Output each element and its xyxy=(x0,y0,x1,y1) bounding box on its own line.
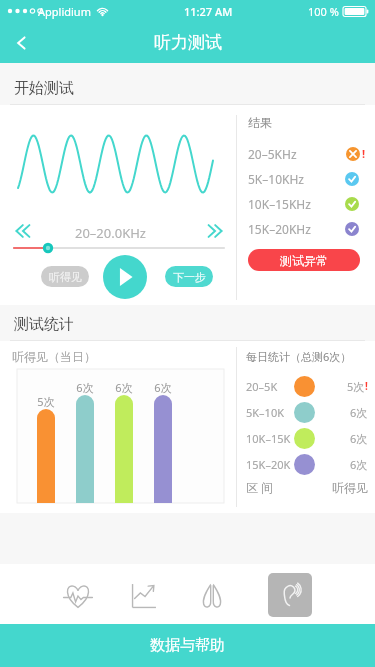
staticText: 测试异常 xyxy=(280,253,328,268)
staticText: 测试统计 xyxy=(14,315,74,334)
staticText: 10K–15K xyxy=(246,431,293,446)
staticText: ! xyxy=(362,146,366,161)
staticText: 6次 xyxy=(150,380,176,395)
button[interactable]: 数据与帮助 xyxy=(0,624,375,667)
staticText: 区 间 xyxy=(246,479,274,495)
staticText: 听得见 xyxy=(49,270,82,284)
staticText: 5次 xyxy=(347,379,365,394)
button[interactable]: Play xyxy=(103,255,147,299)
staticText: 听力测试 xyxy=(154,32,222,53)
button[interactable]: Lungs xyxy=(192,576,232,616)
staticText: 5K–10KHz xyxy=(248,171,304,187)
staticText: 15K–20KHz xyxy=(248,221,311,237)
staticText: 6次 xyxy=(350,431,368,446)
staticText: 数据与帮助 xyxy=(150,636,225,655)
staticText: 15K–20K xyxy=(246,457,293,472)
button[interactable]: 测试异常 xyxy=(248,249,360,271)
staticText: 6次 xyxy=(350,457,368,472)
button[interactable]: 5K–10KHz xyxy=(248,166,366,191)
button[interactable]: 20–5KHz xyxy=(248,141,366,166)
button[interactable]: Heart rate xyxy=(58,576,98,616)
button[interactable]: 10K–15KHz xyxy=(248,191,366,216)
staticText: 6次 xyxy=(111,380,137,395)
staticText: 20–5KHz xyxy=(248,146,297,162)
button[interactable]: 下一步 xyxy=(165,266,213,287)
staticText: 听得见 xyxy=(332,480,368,495)
button[interactable]: Back xyxy=(0,22,44,63)
button[interactable]: 15K–20KHz xyxy=(248,216,366,241)
staticText: ! xyxy=(365,379,368,393)
button[interactable]: 听得见 xyxy=(41,266,89,287)
staticText: 5次 xyxy=(33,394,59,409)
button[interactable]: Trends xyxy=(124,576,164,616)
button[interactable]: Next xyxy=(196,219,230,243)
staticText: 6次 xyxy=(72,380,98,395)
button[interactable]: Previous xyxy=(8,219,42,243)
staticText: 10K–15KHz xyxy=(248,196,311,212)
staticText: 结果 xyxy=(248,115,272,130)
staticText: 听得见（当日） xyxy=(12,349,96,364)
staticText: 20–20.0KHz xyxy=(75,224,146,242)
staticText: Applidium xyxy=(38,4,91,19)
staticText: 每日统计（总测6次） xyxy=(246,349,352,364)
staticText: 开始测试 xyxy=(14,79,74,98)
staticText: 5K–10K xyxy=(246,405,293,420)
staticText: 下一步 xyxy=(173,270,206,284)
staticText: 100 % xyxy=(308,4,339,19)
staticText: 6次 xyxy=(350,405,368,420)
staticText: 11:27 AM xyxy=(184,4,233,19)
button[interactable]: Hearing xyxy=(268,573,312,617)
staticText: 20–5K xyxy=(246,379,293,394)
